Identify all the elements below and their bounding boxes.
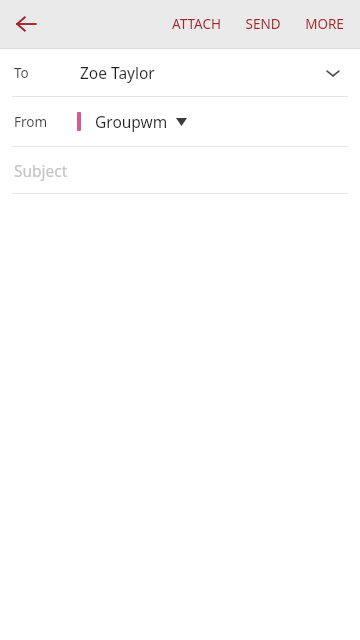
staticText: ATTACH — [172, 15, 221, 33]
button[interactable]: From — [0, 97, 360, 146]
staticText: Zoe Taylor — [80, 62, 155, 83]
staticText: To — [14, 64, 29, 82]
staticText: SEND — [245, 15, 281, 33]
button[interactable]: Back — [6, 4, 46, 44]
button[interactable]: Subject — [0, 147, 360, 193]
button[interactable]: ATTACH — [160, 3, 233, 45]
staticText: Groupwm — [95, 111, 168, 132]
button[interactable]: Expand recipients — [316, 56, 350, 90]
button[interactable]: SEND — [233, 3, 293, 45]
button[interactable]: MORE — [293, 3, 356, 45]
staticText: MORE — [305, 15, 344, 33]
staticText: Subject — [14, 160, 68, 181]
staticText: From — [14, 113, 48, 131]
button[interactable]: To — [0, 49, 360, 96]
